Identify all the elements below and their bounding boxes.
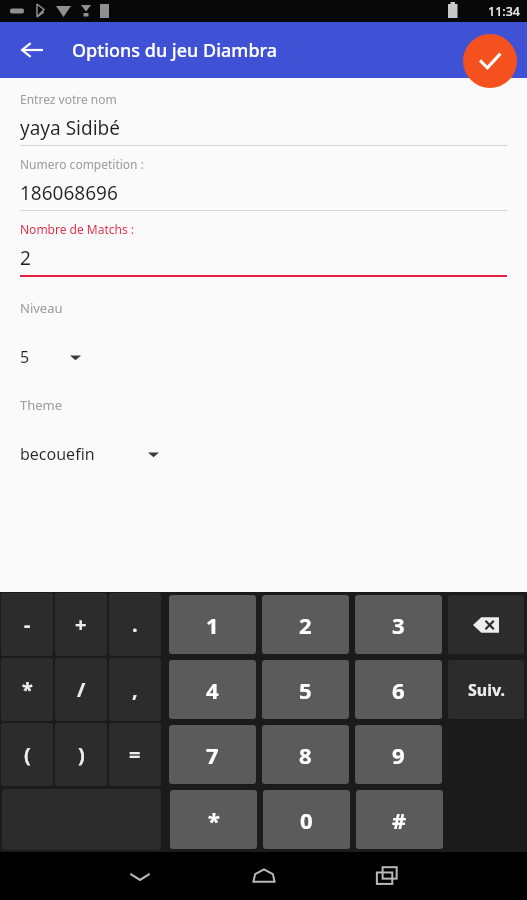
button[interactable]: Retour [10,28,54,72]
staticText: yaya Sidibé [20,115,120,141]
button[interactable]: 6 [355,660,442,719]
staticText: 4 [206,675,219,705]
button[interactable]: 0 [263,790,350,849]
button[interactable]: 1 [169,595,256,654]
staticText: becouefin [20,443,95,465]
staticText: 0 [300,805,313,835]
staticText: Entrez votre nom [20,91,117,107]
button[interactable]: 3 [355,595,442,654]
button[interactable]: - [1,593,53,656]
button[interactable]: / [55,658,107,721]
staticText: 1 [206,610,219,640]
staticText: , [132,676,138,703]
staticText: ) [78,741,85,768]
staticText: 186068696 [20,180,118,206]
staticText: 6 [392,675,405,705]
staticText: * [208,805,220,835]
button[interactable]: Numero competition : [20,156,507,211]
staticText: = [129,741,141,768]
button[interactable]: 8 [262,725,349,784]
button[interactable]: * [1,658,53,721]
staticText: 7 [206,740,219,770]
staticText: Niveau [20,299,63,317]
button[interactable]: Entrez votre nom [20,91,507,146]
staticText: 5 [20,346,30,368]
button[interactable]: Accueil [244,856,284,896]
button[interactable]: Nombre de Matchs : [20,221,507,277]
button[interactable]: # [356,790,443,849]
staticText: 8 [299,740,312,770]
button[interactable]: 9 [355,725,442,784]
staticText: # [392,805,407,835]
staticText: . [132,611,138,638]
staticText: * [22,676,33,703]
staticText: / [77,676,86,703]
staticText: 2 [20,245,31,271]
button[interactable]: * [170,790,257,849]
button[interactable]: Effacer [448,595,524,654]
button[interactable]: 5 [20,346,507,368]
button[interactable]: ( [1,723,53,786]
button[interactable]: 7 [169,725,256,784]
staticText: 5 [299,675,312,705]
button[interactable]: + [55,593,107,656]
staticText: 11:34 [488,3,521,20]
staticText: Suiv. [468,679,505,701]
button[interactable]: , [109,658,161,721]
button[interactable]: becouefin [20,443,507,465]
button[interactable]: 5 [262,660,349,719]
button[interactable]: Valider [463,34,517,88]
button[interactable]: ) [55,723,107,786]
staticText: 2 [299,610,312,640]
staticText: 9 [392,740,405,770]
staticText: Nombre de Matchs : [20,221,135,237]
button[interactable]: = [109,723,161,786]
staticText: ( [24,741,31,768]
button[interactable]: Applications récentes [367,856,407,896]
staticText: - [24,611,31,638]
staticText: Options du jeu Diambra [72,38,278,63]
button[interactable]: . [109,593,161,656]
button[interactable]: 2 [262,595,349,654]
button[interactable]: Masquer le clavier [120,856,160,896]
staticText: Theme [20,396,63,414]
staticText: Numero competition : [20,156,144,172]
button[interactable]: Suiv. [448,660,524,719]
staticText: 3 [392,610,405,640]
staticText: + [75,611,87,638]
button[interactable]: 4 [169,660,256,719]
